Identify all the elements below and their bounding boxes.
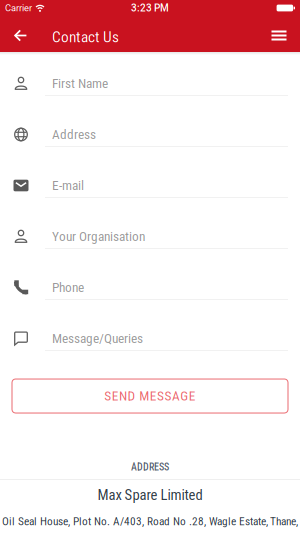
staticText: Phone (52, 280, 84, 295)
staticText: Carrier (5, 2, 32, 13)
staticText: ADDRESS (131, 461, 169, 473)
button[interactable]: Message/Queries (0, 330, 300, 351)
staticText: E-mail (52, 178, 84, 193)
staticText: SEND MESSAGE (104, 388, 196, 404)
staticText: Your Organisation (52, 229, 145, 244)
button[interactable]: Your Organisation (0, 228, 300, 249)
staticText: 3:23 PM (131, 2, 169, 14)
staticText: Max Spare Limited (97, 486, 202, 504)
button[interactable]: Phone (0, 279, 300, 300)
staticText: Message/Queries (52, 331, 143, 346)
staticText: Oil Seal House, Plot No. A/403, Road No … (2, 515, 298, 528)
button[interactable]: Back (0, 19, 37, 52)
staticText: Address (52, 127, 96, 142)
staticText: Contact Us (52, 28, 119, 46)
staticText: First Name (52, 76, 108, 91)
button[interactable]: SEND MESSAGE (0, 379, 300, 413)
button[interactable]: E-mail (0, 177, 300, 198)
button[interactable]: Menu (271, 19, 300, 52)
button[interactable]: First Name (0, 75, 300, 96)
button[interactable]: Address (0, 126, 300, 147)
